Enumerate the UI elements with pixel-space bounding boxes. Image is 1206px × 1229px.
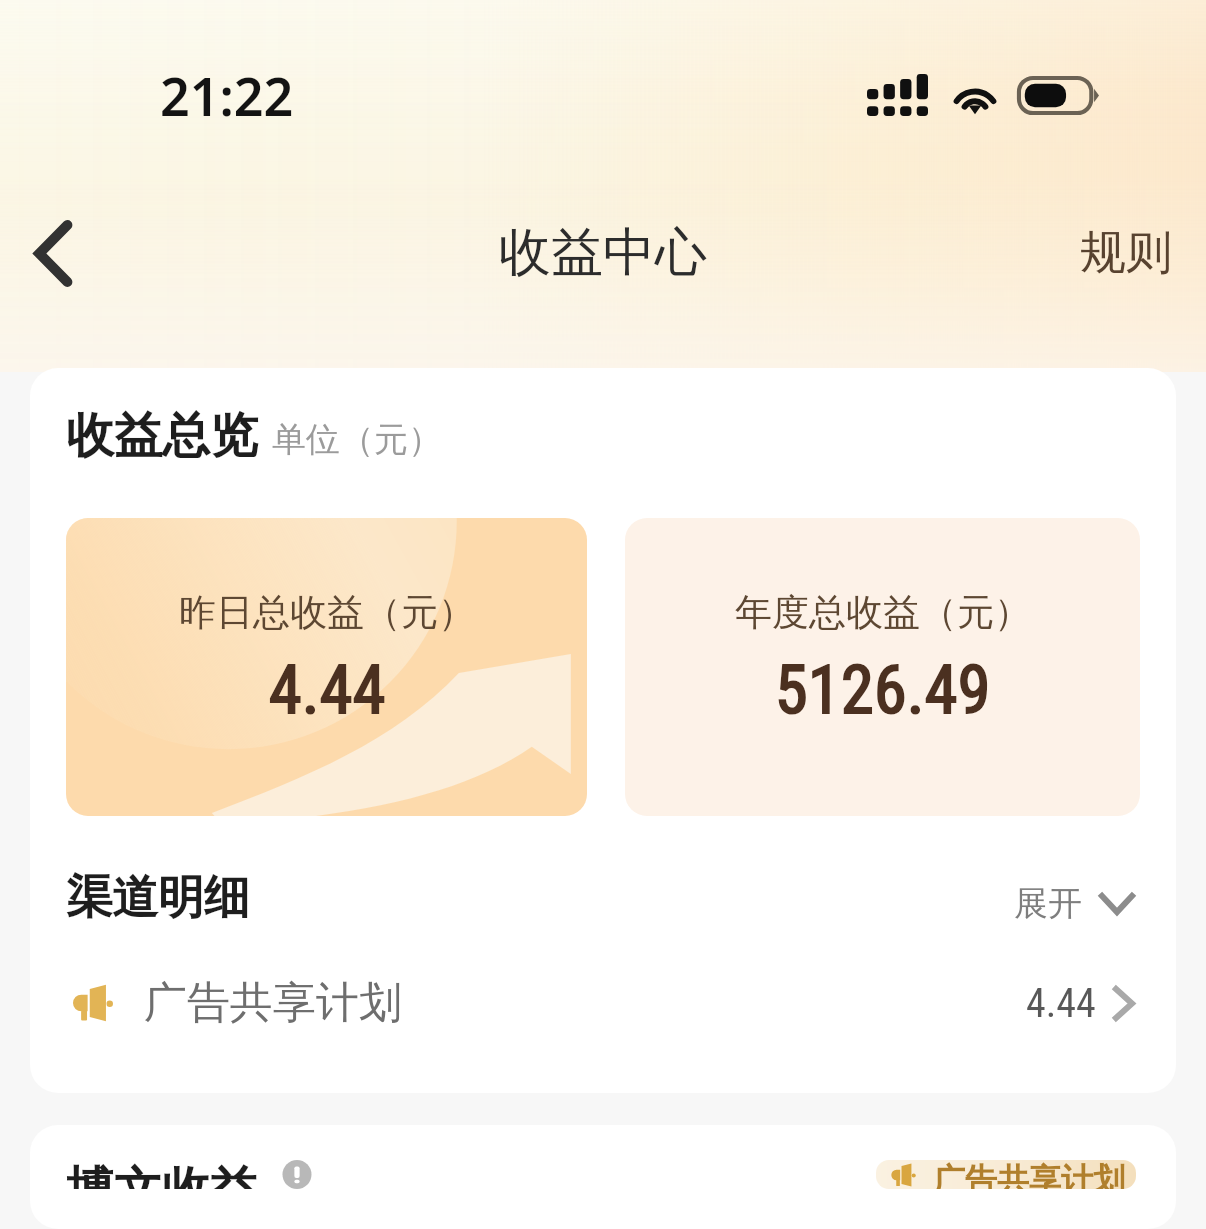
button[interactable]: 年度总收益（元） bbox=[625, 518, 1140, 816]
button[interactable]: 规则 bbox=[1050, 208, 1206, 298]
staticText: 4.44 bbox=[269, 652, 386, 729]
staticText: 4.44 bbox=[1026, 980, 1096, 1027]
button[interactable]: 昨日总收益（元） bbox=[66, 518, 587, 816]
staticText: 渠道明细 bbox=[66, 869, 250, 927]
staticText: 21:22 bbox=[160, 60, 294, 131]
staticText: 广告共享计划 bbox=[144, 976, 402, 1030]
staticText: 单位（元） bbox=[272, 418, 442, 461]
button[interactable]: 展开 bbox=[1008, 874, 1138, 933]
staticText: 博文收益 bbox=[66, 1160, 258, 1189]
staticText: 展开 bbox=[1014, 882, 1082, 925]
button[interactable]: 广告共享计划 bbox=[30, 968, 1176, 1038]
staticText: 收益中心 bbox=[499, 220, 707, 286]
button[interactable]: 广告共享计划 bbox=[876, 1160, 1136, 1189]
staticText: 广告共享计划 bbox=[933, 1160, 1125, 1189]
staticText: 昨日总收益（元） bbox=[179, 589, 475, 636]
staticText: 规则 bbox=[1080, 224, 1172, 282]
button[interactable]: Info bbox=[276, 1160, 318, 1189]
staticText: 年度总收益（元） bbox=[735, 589, 1031, 636]
button[interactable]: Back bbox=[7, 207, 99, 299]
staticText: 5126.49 bbox=[775, 652, 991, 729]
staticText: 收益总览 bbox=[66, 406, 258, 466]
